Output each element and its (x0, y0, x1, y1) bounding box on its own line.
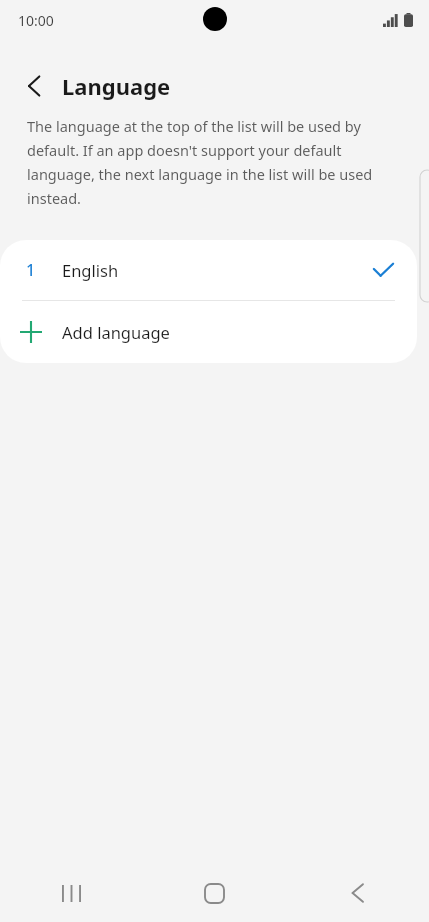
staticText: Language (62, 71, 171, 101)
staticText: 1 (26, 259, 36, 281)
staticText: Add language (62, 321, 170, 343)
button[interactable]: Back (286, 864, 429, 922)
button[interactable]: Recent apps (0, 864, 143, 922)
button[interactable]: 1 (0, 240, 417, 300)
staticText: The language at the top of the list will… (27, 116, 401, 208)
button[interactable]: Home (143, 864, 286, 922)
staticText: 10:00 (18, 11, 54, 30)
button[interactable]: Navigate up (14, 66, 54, 106)
staticText: English (62, 259, 119, 281)
button[interactable]: Add language (0, 301, 417, 363)
